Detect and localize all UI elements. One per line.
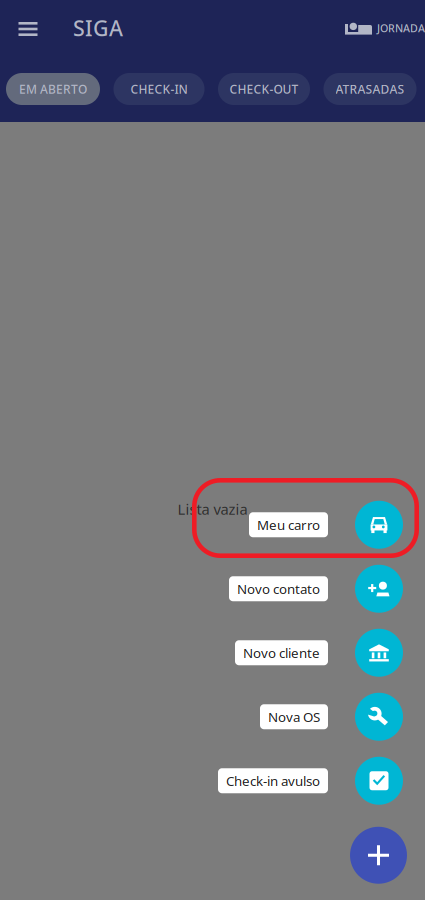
staticText: Check-in avulso xyxy=(226,772,320,790)
button[interactable]: Nova OS xyxy=(260,704,328,729)
button[interactable]: CHECK-IN xyxy=(113,73,204,105)
button[interactable]: Jornada xyxy=(345,5,425,51)
staticText: Meu carro xyxy=(257,516,320,534)
button[interactable]: Adicionar xyxy=(350,827,407,884)
button[interactable]: CHECK-OUT xyxy=(218,73,310,105)
staticText: Novo cliente xyxy=(243,644,320,662)
staticText: JORNADA xyxy=(377,21,425,35)
button[interactable]: Meu carro xyxy=(355,501,403,549)
staticText: Nova OS xyxy=(268,708,320,726)
button[interactable]: Novo contato xyxy=(355,565,403,613)
button[interactable]: Check-in avulso xyxy=(355,757,403,805)
button[interactable]: Novo cliente xyxy=(355,629,403,677)
button[interactable]: Novo contato xyxy=(229,576,328,601)
staticText: CHECK-IN xyxy=(130,81,187,97)
button[interactable]: ATRASADAS xyxy=(323,73,416,105)
button[interactable]: Nova OS xyxy=(355,693,403,741)
button[interactable]: EM ABERTO xyxy=(6,73,100,105)
staticText: SIGA xyxy=(73,14,123,42)
button[interactable]: Meu carro xyxy=(249,512,328,537)
staticText: Novo contato xyxy=(237,580,320,598)
staticText: Lista vazia xyxy=(177,499,247,519)
staticText: EM ABERTO xyxy=(19,81,87,97)
staticText: ATRASADAS xyxy=(335,81,404,97)
button[interactable]: Check-in avulso xyxy=(218,768,328,793)
button[interactable]: Menu xyxy=(5,5,51,51)
button[interactable]: Novo cliente xyxy=(235,640,328,665)
staticText: CHECK-OUT xyxy=(229,81,298,97)
